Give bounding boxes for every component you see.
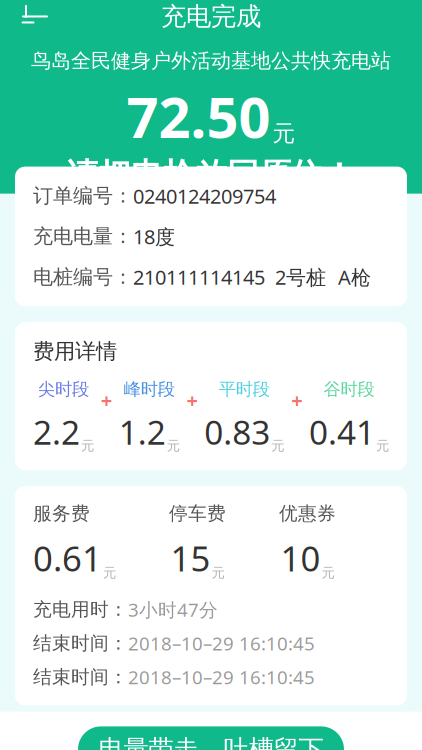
- staticText: 15: [170, 535, 210, 581]
- staticText: 72.50: [126, 79, 270, 153]
- button[interactable]: 电量带走，吐槽留下: [78, 726, 344, 750]
- staticText: 3小时47分: [128, 597, 218, 622]
- staticText: 鸟岛全民健身户外活动基地公共快充电站: [31, 48, 391, 73]
- staticText: 元: [103, 565, 116, 581]
- staticText: 元: [167, 438, 180, 454]
- staticText: +: [101, 387, 112, 414]
- staticText: 结束时间：: [33, 632, 128, 655]
- staticText: 210111114145 2号桩 A枪: [133, 264, 371, 290]
- staticText: 平时段: [219, 378, 270, 400]
- staticText: 请把电枪放回原位！: [67, 155, 355, 195]
- staticText: 0240124209754: [133, 183, 276, 209]
- staticText: 尖时段: [38, 378, 89, 400]
- staticText: 电桩编号：: [33, 265, 133, 289]
- staticText: 峰时段: [124, 378, 175, 400]
- staticText: 元: [321, 565, 334, 581]
- staticText: +: [186, 387, 197, 414]
- staticText: 谷时段: [323, 378, 374, 400]
- staticText: 电量带走，吐槽留下: [98, 734, 323, 750]
- staticText: 服务费: [33, 502, 90, 525]
- button[interactable]: 返回: [12, 0, 58, 36]
- staticText: 10: [280, 535, 320, 581]
- staticText: 0.61: [33, 535, 102, 581]
- staticText: 元: [272, 120, 295, 147]
- staticText: 优惠券: [279, 502, 336, 525]
- staticText: 1.2: [119, 410, 166, 454]
- staticText: 2018–10–29 16:10:45: [128, 631, 315, 656]
- staticText: 元: [271, 438, 284, 454]
- staticText: 元: [211, 565, 224, 581]
- staticText: 费用详情: [33, 338, 117, 364]
- staticText: 结束时间：: [33, 665, 128, 688]
- staticText: 2018–10–29 16:10:45: [128, 665, 315, 689]
- staticText: 0.83: [204, 410, 270, 454]
- staticText: +: [291, 387, 302, 414]
- staticText: 停车费: [169, 502, 226, 525]
- staticText: 0.41: [309, 410, 375, 454]
- staticText: 元: [376, 438, 389, 454]
- staticText: 2.2: [33, 410, 80, 454]
- staticText: 充电电量：: [33, 224, 133, 249]
- staticText: 订单编号：: [33, 184, 133, 208]
- staticText: 元: [81, 438, 94, 454]
- staticText: 充电完成: [161, 1, 261, 32]
- staticText: 18度: [133, 223, 175, 250]
- staticText: 充电用时：: [33, 598, 128, 621]
